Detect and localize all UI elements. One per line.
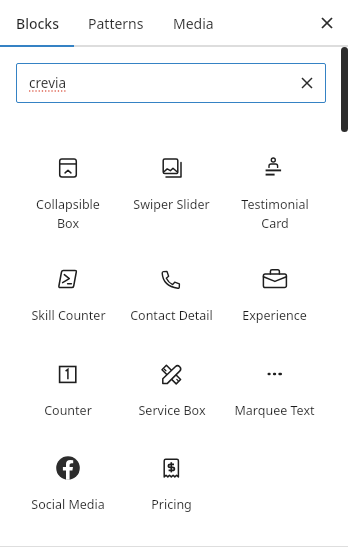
staticText: Pricing	[151, 496, 192, 513]
staticText: Marquee Text	[234, 402, 315, 419]
button[interactable]: Collapsible Box	[16, 156, 120, 232]
button[interactable]: Skill Counter	[16, 267, 120, 324]
staticText: Contact Detail	[130, 307, 213, 324]
button[interactable]: Marquee Text	[223, 362, 326, 419]
staticText: Social Media	[31, 496, 105, 513]
staticText: Media	[173, 14, 214, 33]
button[interactable]: Pricing	[120, 456, 223, 513]
staticText: Skill Counter	[31, 307, 106, 324]
staticText: Swiper Slider	[133, 196, 210, 213]
staticText: Collapsible Box	[36, 196, 100, 232]
button[interactable]: Media	[158, 0, 228, 46]
button[interactable]: Clear search	[287, 64, 326, 102]
staticText: crevia	[29, 74, 67, 92]
staticText: Experience	[242, 307, 307, 324]
button[interactable]: Patterns	[74, 0, 158, 46]
button[interactable]: Swiper Slider	[120, 156, 223, 213]
button[interactable]: Testimonial Card	[223, 156, 326, 232]
staticText: Counter	[44, 402, 92, 419]
staticText: Testimonial Card	[241, 196, 309, 232]
button[interactable]: Counter	[16, 362, 120, 419]
button[interactable]: Blocks	[0, 0, 74, 46]
button[interactable]: Social Media	[16, 456, 120, 513]
button[interactable]: Contact Detail	[120, 267, 223, 324]
button[interactable]: crevia	[16, 63, 326, 103]
button[interactable]: Close	[305, 0, 348, 46]
staticText: Service Box	[138, 402, 206, 419]
staticText: Blocks	[16, 14, 59, 33]
button[interactable]: Experience	[223, 267, 326, 324]
button[interactable]: Service Box	[120, 362, 223, 419]
staticText: Patterns	[88, 14, 144, 33]
